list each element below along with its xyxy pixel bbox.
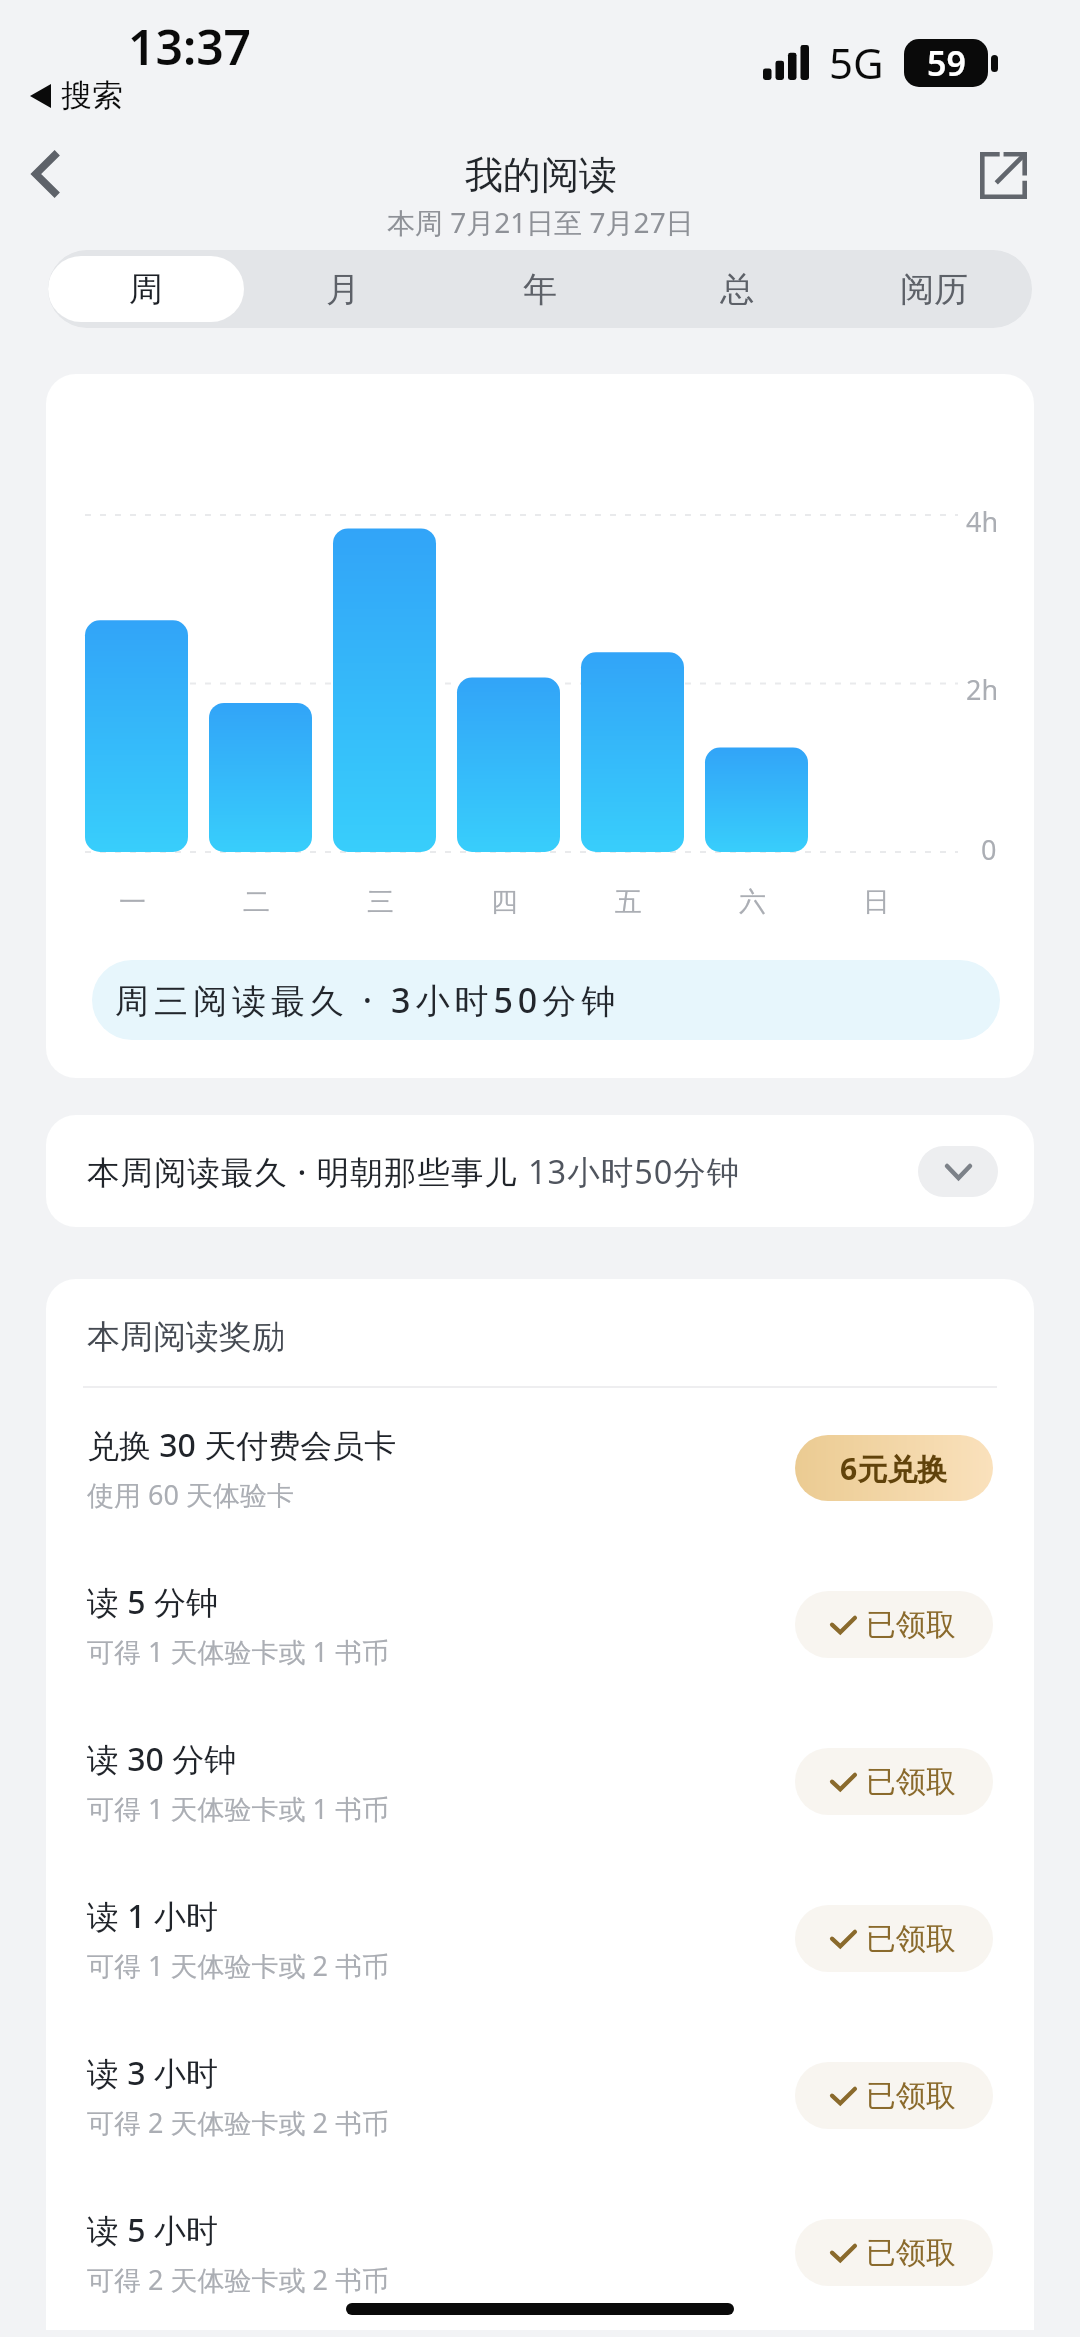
staticText: 总 (720, 268, 754, 311)
staticText: 四 (491, 885, 518, 919)
staticText: 读 5 小时 (87, 2208, 218, 2252)
staticText: 4h (966, 503, 999, 540)
staticText: 搜索 (61, 76, 123, 115)
staticText: 可得 2 天体验卡或 2 书币 (87, 2261, 389, 2298)
staticText: 已领取 (866, 1763, 956, 1801)
button[interactable]: 本周阅读最久 · 明朝那些事儿 (46, 1115, 1034, 1227)
button[interactable]: Back (0, 119, 101, 229)
button[interactable]: 年 (441, 256, 638, 322)
staticText: 已领取 (866, 2077, 956, 2115)
staticText: 6元兑换 (840, 1448, 948, 1489)
staticText: 一 (119, 885, 146, 919)
staticText: 可得 1 天体验卡或 2 书币 (87, 1947, 389, 1984)
staticText: 可得 1 天体验卡或 1 书币 (87, 1790, 389, 1827)
staticText: 已领取 (866, 1606, 956, 1644)
staticText: 三 (367, 885, 394, 919)
button[interactable]: 月 (244, 256, 441, 322)
staticText: 读 30 分钟 (87, 1737, 237, 1781)
button[interactable]: Share (951, 123, 1055, 227)
staticText: 59 (927, 40, 966, 86)
button[interactable]: 周 (48, 256, 244, 322)
staticText: 日 (863, 885, 890, 919)
staticText: 本周阅读奖励 (87, 1316, 285, 1358)
button[interactable]: 已领取 (795, 2062, 993, 2129)
staticText: 使用 60 天体验卡 (87, 1476, 294, 1513)
staticText: 阅历 (900, 268, 968, 311)
button[interactable]: 已领取 (795, 1591, 993, 1658)
staticText: 可得 1 天体验卡或 1 书币 (87, 1633, 389, 1670)
staticText: 二 (243, 885, 270, 919)
staticText: 读 5 分钟 (87, 1580, 218, 1624)
staticText: 周三阅读最久 · 3小时50分钟 (115, 977, 621, 1023)
staticText: 可得 2 天体验卡或 2 书币 (87, 2104, 389, 2141)
button[interactable]: 6元兑换 (795, 1435, 993, 1501)
staticText: 5G (829, 34, 884, 91)
button[interactable]: 已领取 (795, 1905, 993, 1972)
staticText: 五 (615, 885, 642, 919)
staticText: 我的阅读 (465, 151, 617, 199)
button[interactable]: 总 (638, 256, 835, 322)
button[interactable]: 阅历 (835, 256, 1032, 322)
button[interactable]: 已领取 (795, 2219, 993, 2286)
staticText: 周 (129, 268, 163, 311)
staticText: 读 3 小时 (87, 2051, 218, 2095)
staticText: 已领取 (866, 2234, 956, 2272)
button[interactable]: 已领取 (795, 1748, 993, 1815)
staticText: 月 (326, 268, 360, 311)
staticText: 年 (523, 268, 557, 311)
staticText: 13:37 (128, 14, 252, 79)
staticText: 已领取 (866, 1920, 956, 1958)
staticText: 0 (981, 831, 997, 868)
staticText: 兑换 30 天付费会员卡 (87, 1423, 397, 1467)
staticText: 读 1 小时 (87, 1894, 218, 1938)
staticText: 六 (739, 885, 766, 919)
staticText: 13小时50分钟 (528, 1149, 741, 1193)
staticText: 2h (966, 671, 999, 708)
staticText: 本周 7月21日至 7月27日 (387, 203, 694, 241)
staticText: 本周阅读最久 · 明朝那些事儿 (87, 1149, 528, 1193)
